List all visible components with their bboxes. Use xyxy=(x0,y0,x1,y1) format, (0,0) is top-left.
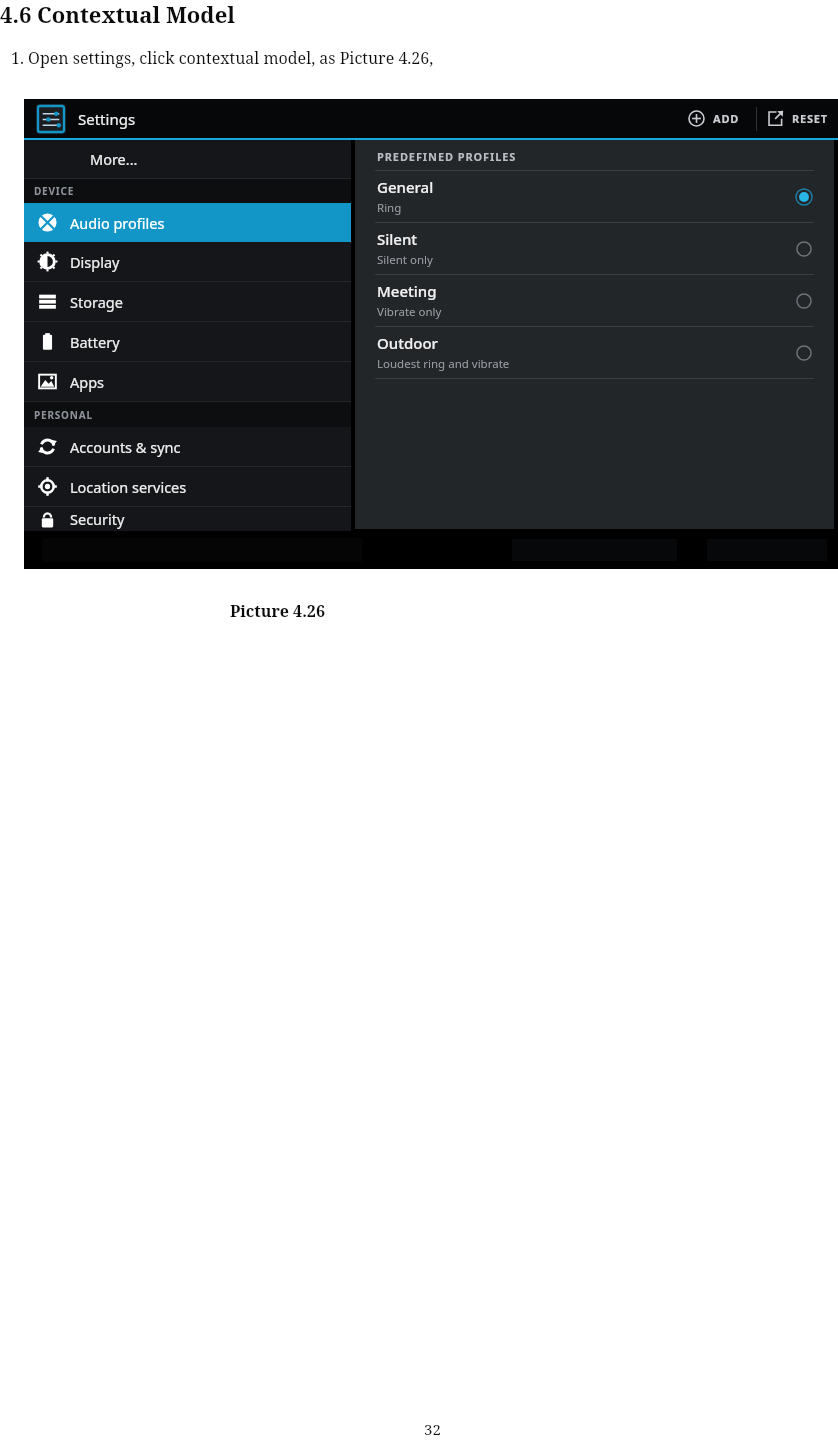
staticText: 4.6 Contextual Model xyxy=(0,0,235,29)
staticText: More... xyxy=(90,149,138,169)
staticText: ADD xyxy=(713,111,740,126)
staticText: 32 xyxy=(424,1419,441,1439)
button[interactable]: Outdoor xyxy=(355,327,834,378)
button[interactable]: Apps xyxy=(24,362,351,401)
other: General selector xyxy=(796,189,812,205)
staticText: Battery xyxy=(70,332,120,352)
button[interactable]: Audio profiles xyxy=(24,203,351,242)
staticText: Loudest ring and vibrate xyxy=(377,356,510,372)
other: Silent selector xyxy=(796,241,812,257)
button[interactable]: Meeting xyxy=(355,275,834,326)
staticText: Accounts & sync xyxy=(70,437,181,457)
button[interactable]: Security xyxy=(24,507,351,531)
staticText: Silent only xyxy=(377,252,433,268)
button[interactable]: Silent xyxy=(355,223,834,274)
button[interactable]: Battery xyxy=(24,322,351,361)
staticText: Silent xyxy=(377,229,418,249)
staticText: Settings xyxy=(78,109,136,129)
staticText: General xyxy=(377,177,434,197)
other: Meeting selector xyxy=(796,293,812,309)
button[interactable]: Storage xyxy=(24,282,351,321)
staticText: RESET xyxy=(792,111,828,126)
staticText: Display xyxy=(70,252,120,272)
button[interactable]: Settings app icon xyxy=(36,104,66,134)
staticText: Outdoor xyxy=(377,333,438,353)
staticText: Meeting xyxy=(377,281,437,301)
staticText: DEVICE xyxy=(34,184,75,198)
button[interactable]: Accounts & sync xyxy=(24,427,351,466)
button[interactable]: Location services xyxy=(24,467,351,506)
staticText: Location services xyxy=(70,477,187,497)
staticText: Security xyxy=(70,509,125,529)
button[interactable]: General xyxy=(355,171,834,222)
button[interactable]: ADD xyxy=(680,99,748,138)
staticText: PREDEFINED PROFILES xyxy=(377,149,517,164)
other: Outdoor selector xyxy=(796,345,812,361)
button[interactable]: Display xyxy=(24,242,351,281)
button[interactable]: More... xyxy=(24,140,351,178)
staticText: 1. Open settings, click contextual model… xyxy=(11,47,434,69)
staticText: Audio profiles xyxy=(70,213,165,233)
staticText: Picture 4.26 xyxy=(230,600,325,622)
staticText: Vibrate only xyxy=(377,304,442,320)
staticText: Apps xyxy=(70,372,105,392)
staticText: Ring xyxy=(377,200,402,216)
staticText: PERSONAL xyxy=(34,408,93,422)
button[interactable]: RESET xyxy=(767,99,838,138)
staticText: Storage xyxy=(70,292,123,312)
